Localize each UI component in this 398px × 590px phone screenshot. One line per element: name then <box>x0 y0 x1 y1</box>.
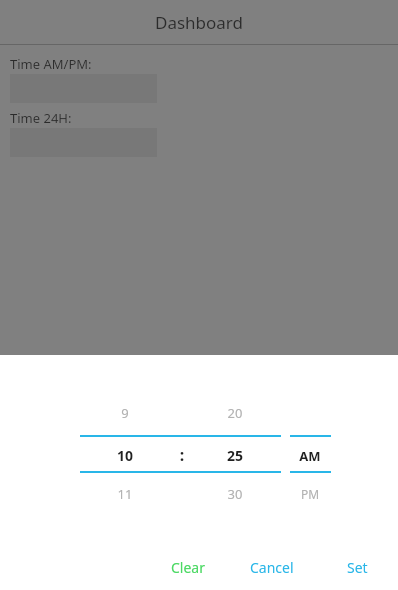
staticText: Time 24H: <box>10 109 72 127</box>
button[interactable]: 25 <box>205 446 265 465</box>
button[interactable]: 30 <box>205 485 265 503</box>
staticText: Dashboard <box>155 11 244 34</box>
button[interactable]: Set <box>333 552 381 582</box>
staticText: 25 <box>205 446 265 465</box>
staticText: PM <box>285 486 335 502</box>
staticText: 20 <box>205 404 265 422</box>
staticText: 9 <box>95 404 155 422</box>
staticText: Time AM/PM: <box>10 55 92 73</box>
button[interactable]: AM <box>285 447 335 465</box>
button[interactable]: PM <box>285 486 335 502</box>
button[interactable]: 10 <box>95 446 155 465</box>
staticText: Set <box>347 558 368 577</box>
staticText: 30 <box>205 485 265 503</box>
button[interactable]: 20 <box>205 404 265 422</box>
button[interactable]: 11 <box>95 485 155 503</box>
staticText: Cancel <box>250 558 294 577</box>
staticText: Clear <box>171 558 205 577</box>
button[interactable]: Clear <box>160 552 216 582</box>
staticText: 10 <box>95 446 155 465</box>
button[interactable]: Dashboard <box>0 0 398 44</box>
button[interactable]: 9 <box>95 404 155 422</box>
staticText: : <box>172 444 192 466</box>
staticText: 11 <box>95 485 155 503</box>
staticText: AM <box>285 447 335 465</box>
button[interactable]: Cancel <box>237 552 307 582</box>
